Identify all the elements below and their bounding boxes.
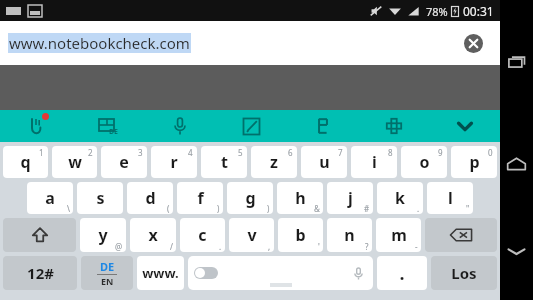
- staticText: DE: [100, 259, 115, 274]
- button[interactable]: j: [327, 182, 373, 214]
- button[interactable]: Add: [358, 110, 429, 142]
- staticText: 0: [488, 147, 493, 158]
- staticText: 7: [338, 147, 343, 158]
- staticText: ': [318, 241, 320, 252]
- button[interactable]: Hide keyboard: [429, 110, 500, 142]
- button[interactable]: x: [130, 218, 176, 252]
- staticText: -: [415, 241, 418, 252]
- button[interactable]: c: [180, 218, 225, 252]
- staticText: b: [295, 224, 306, 246]
- staticText: k: [395, 187, 405, 209]
- button[interactable]: m: [376, 218, 421, 252]
- staticText: h: [295, 187, 306, 209]
- staticText: .: [219, 241, 222, 252]
- button[interactable]: Backspace: [425, 218, 497, 252]
- staticText: 5: [238, 147, 243, 158]
- staticText: ,: [268, 241, 271, 252]
- button[interactable]: Los: [431, 256, 497, 290]
- button[interactable]: www.: [137, 256, 184, 290]
- button[interactable]: Handwriting: [0, 110, 72, 142]
- button[interactable]: k: [377, 182, 423, 214]
- staticText: @: [115, 241, 123, 252]
- staticText: n: [344, 224, 355, 246]
- staticText: ): [217, 203, 220, 214]
- button[interactable]: n: [327, 218, 372, 252]
- button[interactable]: .: [377, 256, 427, 290]
- staticText: m: [391, 224, 407, 246]
- button[interactable]: z: [251, 146, 297, 178]
- button[interactable]: 12#: [3, 256, 77, 290]
- button[interactable]: o: [401, 146, 447, 178]
- staticText: j: [348, 187, 353, 209]
- staticText: ": [466, 203, 470, 214]
- staticText: g: [245, 187, 256, 209]
- button[interactable]: y: [80, 218, 126, 252]
- button[interactable]: Space: [188, 256, 373, 290]
- staticText: c: [198, 224, 207, 246]
- button[interactable]: u: [301, 146, 347, 178]
- staticText: 9: [438, 147, 443, 158]
- button[interactable]: l: [427, 182, 473, 214]
- staticText: t: [221, 151, 228, 173]
- staticText: EN: [101, 275, 114, 287]
- staticText: a: [45, 187, 55, 209]
- staticText: q: [20, 151, 31, 173]
- staticText: ?: [365, 241, 369, 252]
- button[interactable]: r: [151, 146, 197, 178]
- staticText: /: [170, 241, 173, 252]
- button[interactable]: Clipboard: [287, 110, 358, 142]
- button[interactable]: Clear: [458, 28, 488, 58]
- staticText: DE: [109, 127, 119, 137]
- staticText: i: [372, 151, 377, 173]
- button[interactable]: Voice input: [144, 110, 216, 142]
- staticText: 8: [388, 147, 393, 158]
- staticText: l: [448, 187, 453, 209]
- staticText: w: [68, 151, 82, 173]
- staticText: 4: [188, 147, 193, 158]
- staticText: e: [119, 151, 129, 173]
- staticText: v: [247, 224, 257, 246]
- staticText: y: [98, 224, 108, 246]
- button[interactable]: Shift: [3, 218, 76, 252]
- button[interactable]: g: [227, 182, 273, 214]
- button[interactable]: h: [277, 182, 323, 214]
- staticText: #: [364, 203, 370, 214]
- button[interactable]: p: [451, 146, 497, 178]
- button[interactable]: d: [127, 182, 173, 214]
- staticText: 2: [88, 147, 93, 158]
- staticText: \: [67, 203, 70, 214]
- button[interactable]: f: [177, 182, 223, 214]
- button[interactable]: Home: [500, 148, 533, 181]
- button[interactable]: Edit: [216, 110, 287, 142]
- button[interactable]: t: [201, 146, 247, 178]
- staticText: (: [167, 203, 170, 214]
- staticText: 00:31: [463, 3, 494, 19]
- button[interactable]: q: [3, 146, 48, 178]
- staticText: z: [270, 151, 278, 173]
- staticText: u: [319, 151, 330, 173]
- staticText: ): [267, 203, 270, 214]
- staticText: www.: [142, 264, 179, 282]
- staticText: 6: [288, 147, 293, 158]
- button[interactable]: DE: [81, 256, 133, 290]
- button[interactable]: w: [52, 146, 97, 178]
- button[interactable]: s: [77, 182, 123, 214]
- button[interactable]: v: [229, 218, 274, 252]
- staticText: s: [96, 187, 105, 209]
- staticText: d: [145, 187, 156, 209]
- button[interactable]: b: [278, 218, 323, 252]
- staticText: 3: [138, 147, 143, 158]
- staticText: &: [314, 203, 320, 214]
- button[interactable]: a: [27, 182, 73, 214]
- staticText: r: [170, 151, 178, 173]
- staticText: 78%: [426, 4, 448, 19]
- staticText: o: [419, 151, 430, 173]
- button[interactable]: e: [101, 146, 147, 178]
- staticText: www.notebookcheck.com: [9, 33, 190, 53]
- button[interactable]: Back: [500, 235, 533, 268]
- button[interactable]: i: [351, 146, 397, 178]
- staticText: Los: [451, 263, 477, 283]
- staticText: .: [399, 261, 405, 286]
- button[interactable]: Keyboard layout: [72, 110, 144, 142]
- button[interactable]: Recent apps: [500, 46, 533, 79]
